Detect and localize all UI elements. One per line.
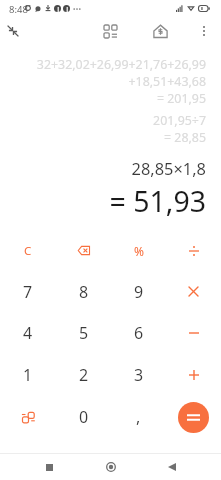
staticText: 0 — [79, 406, 89, 428]
button[interactable]: Widgets — [97, 18, 123, 44]
button[interactable]: More options — [191, 18, 216, 43]
button[interactable]: Multiply — [166, 271, 221, 312]
staticText: 1 — [23, 364, 33, 386]
staticText: 9 — [134, 281, 144, 303]
staticText: 6 — [134, 322, 144, 344]
staticText: = 201,95 — [156, 90, 206, 107]
button[interactable]: Backspace — [56, 230, 111, 271]
staticText: % — [134, 243, 144, 259]
button[interactable]: 6 — [111, 312, 166, 354]
button[interactable]: Recents — [36, 454, 62, 480]
staticText: 2 — [79, 364, 89, 386]
button[interactable]: Equals — [178, 402, 209, 433]
button[interactable]: Home — [98, 454, 124, 480]
staticText: +18,51+43,68 — [128, 73, 206, 90]
button[interactable]: Divide — [166, 230, 221, 271]
button[interactable]: 2 — [56, 354, 111, 396]
staticText: 201,95÷7 — [153, 112, 206, 129]
button[interactable]: Converter — [0, 396, 56, 438]
button[interactable]: 3 — [111, 354, 166, 396]
button[interactable]: 0 — [56, 396, 111, 438]
button[interactable]: Decimal separator — [111, 396, 166, 438]
button[interactable]: Clear — [0, 230, 56, 271]
staticText: 7 — [23, 281, 33, 303]
staticText: 3 — [134, 364, 144, 386]
staticText: C — [24, 243, 32, 259]
button[interactable]: Minus — [166, 312, 221, 354]
staticText: 8 — [79, 281, 89, 303]
button[interactable]: 7 — [0, 271, 56, 312]
button[interactable]: Collapse — [0, 18, 25, 43]
staticText: 28,85×1,8 — [131, 157, 206, 179]
staticText: = 28,85 — [164, 129, 206, 146]
button[interactable]: Back — [159, 454, 185, 480]
staticText: 8:48 — [9, 3, 28, 16]
button[interactable]: Percent — [111, 230, 166, 271]
button[interactable]: Plus — [166, 354, 221, 396]
staticText: = 51,93 — [109, 182, 206, 221]
button[interactable]: Loan calculator — [147, 18, 173, 44]
button[interactable]: 8 — [56, 271, 111, 312]
button[interactable]: 4 — [0, 312, 56, 354]
button[interactable]: 9 — [111, 271, 166, 312]
button[interactable]: 5 — [56, 312, 111, 354]
staticText: 4 — [23, 322, 33, 344]
button[interactable]: 1 — [0, 354, 56, 396]
staticText: 32+32,02+26,99+21,76+26,99 — [36, 56, 206, 73]
staticText: , — [136, 406, 141, 428]
staticText: 5 — [79, 322, 89, 344]
